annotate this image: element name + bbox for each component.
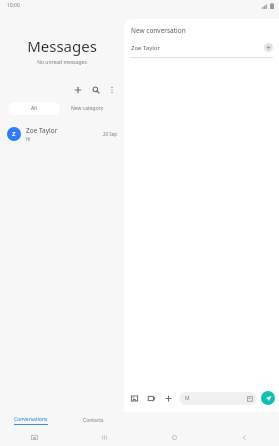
button[interactable]: Gallery xyxy=(129,393,140,404)
staticText: Zoe Taylor xyxy=(26,126,58,135)
button[interactable]: Add recipient xyxy=(264,43,273,52)
button[interactable]: M xyxy=(179,392,257,405)
staticText: No unread messages xyxy=(0,59,124,66)
staticText: 10:00 xyxy=(7,2,20,9)
button[interactable]: Keyboard xyxy=(0,428,69,446)
staticText: Contacts xyxy=(83,417,104,424)
button[interactable]: Conversations xyxy=(0,412,62,428)
staticText: Zoe Taylor xyxy=(131,44,264,52)
button[interactable]: Recents xyxy=(69,428,139,446)
button[interactable]: Contacts xyxy=(62,412,124,428)
staticText: Hi xyxy=(26,136,31,142)
staticText: M xyxy=(185,395,247,402)
staticText: New conversation xyxy=(131,26,186,35)
button[interactable]: Camera xyxy=(146,393,157,404)
staticText: Messages xyxy=(0,36,124,56)
button[interactable]: New message xyxy=(72,84,84,96)
button[interactable]: More options xyxy=(106,84,118,96)
button[interactable]: Z xyxy=(0,122,124,146)
button[interactable]: Home xyxy=(139,428,209,446)
button[interactable]: All xyxy=(8,102,60,115)
staticText: All xyxy=(31,105,37,112)
staticText: Conversations xyxy=(14,416,48,423)
staticText: 20 Sep xyxy=(103,131,118,137)
button[interactable]: Search xyxy=(90,84,102,96)
button[interactable]: Send xyxy=(261,391,275,405)
button[interactable]: Attach xyxy=(163,393,174,404)
button[interactable]: New category xyxy=(69,103,106,114)
staticText: New category xyxy=(71,105,104,112)
staticText: Z xyxy=(12,130,16,138)
